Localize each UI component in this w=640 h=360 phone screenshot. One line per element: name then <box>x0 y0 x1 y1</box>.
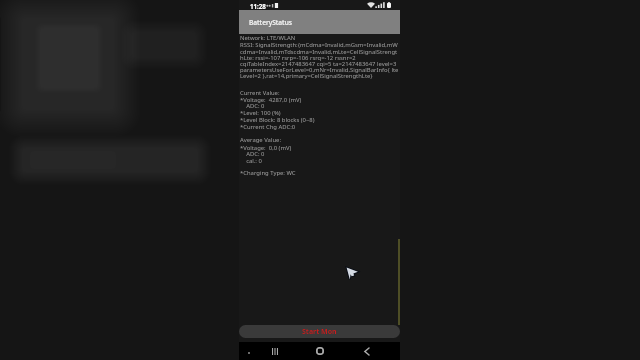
staticText: 11:28 <box>250 2 266 10</box>
staticText: BatteryStatus <box>249 18 292 27</box>
button[interactable]: Back <box>359 344 373 358</box>
staticText: ADC: 0 <box>240 102 265 110</box>
staticText: Network: LTE/WLAN <box>240 34 296 42</box>
staticText: cal.: 0 <box>240 157 262 165</box>
staticText: *Charging Type: WC <box>240 169 296 177</box>
staticText: Start Mon <box>302 327 337 337</box>
button[interactable]: Indicator <box>243 347 254 358</box>
button[interactable]: Start Mon <box>239 325 400 338</box>
button[interactable]: Home <box>313 344 327 358</box>
staticText: Average Value: <box>240 136 281 144</box>
staticText: ADC: 0 <box>240 150 265 158</box>
staticText: *Current Chg ADC:0 <box>240 123 296 131</box>
staticText: *Voltage: 4287,0 (mV) <box>240 96 302 104</box>
staticText: *Level: 100 (%) <box>240 109 281 117</box>
staticText: *Level Block: 8 blocks (0~8) <box>240 116 315 124</box>
staticText: *Voltage: 0,0 (mV) <box>240 144 292 152</box>
button[interactable]: Recent apps <box>268 344 282 358</box>
button[interactable]: BatteryStatus <box>239 10 400 34</box>
staticText: Current Value: <box>240 89 280 97</box>
staticText: RSSI: SignalStrength:{mCdma=Invalid,mGsm… <box>240 41 400 80</box>
